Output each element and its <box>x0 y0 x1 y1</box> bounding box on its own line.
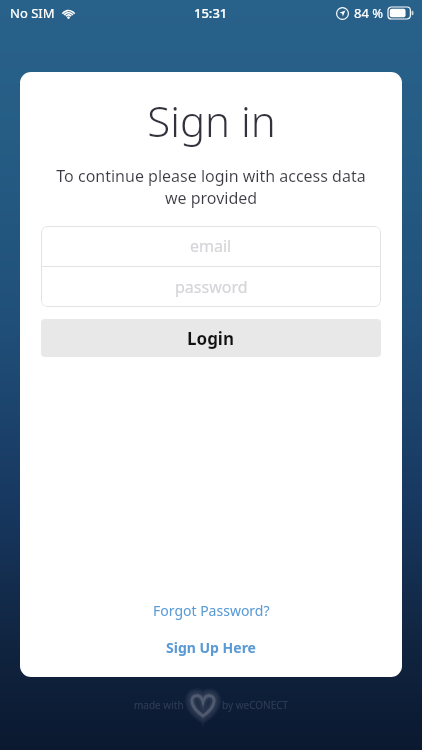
button[interactable]: Forgot Password? <box>143 598 280 623</box>
staticText: 84 % <box>354 4 384 22</box>
staticText: No SIM <box>10 4 55 22</box>
button[interactable]: email <box>41 226 381 266</box>
button[interactable]: Sign Up Here <box>156 635 266 660</box>
staticText: password <box>175 276 248 298</box>
staticText: made with <box>134 698 184 712</box>
staticText: Forgot Password? <box>153 601 270 620</box>
staticText: by weCONECT <box>222 698 289 712</box>
button[interactable]: password <box>41 267 381 307</box>
button[interactable]: Login <box>41 319 381 357</box>
staticText: To continue please login with access dat… <box>30 165 392 209</box>
staticText: Sign Up Here <box>166 638 256 657</box>
staticText: 15:31 <box>194 4 228 22</box>
staticText: Login <box>187 327 235 350</box>
staticText: Sign in <box>147 92 276 149</box>
staticText: email <box>190 235 232 257</box>
